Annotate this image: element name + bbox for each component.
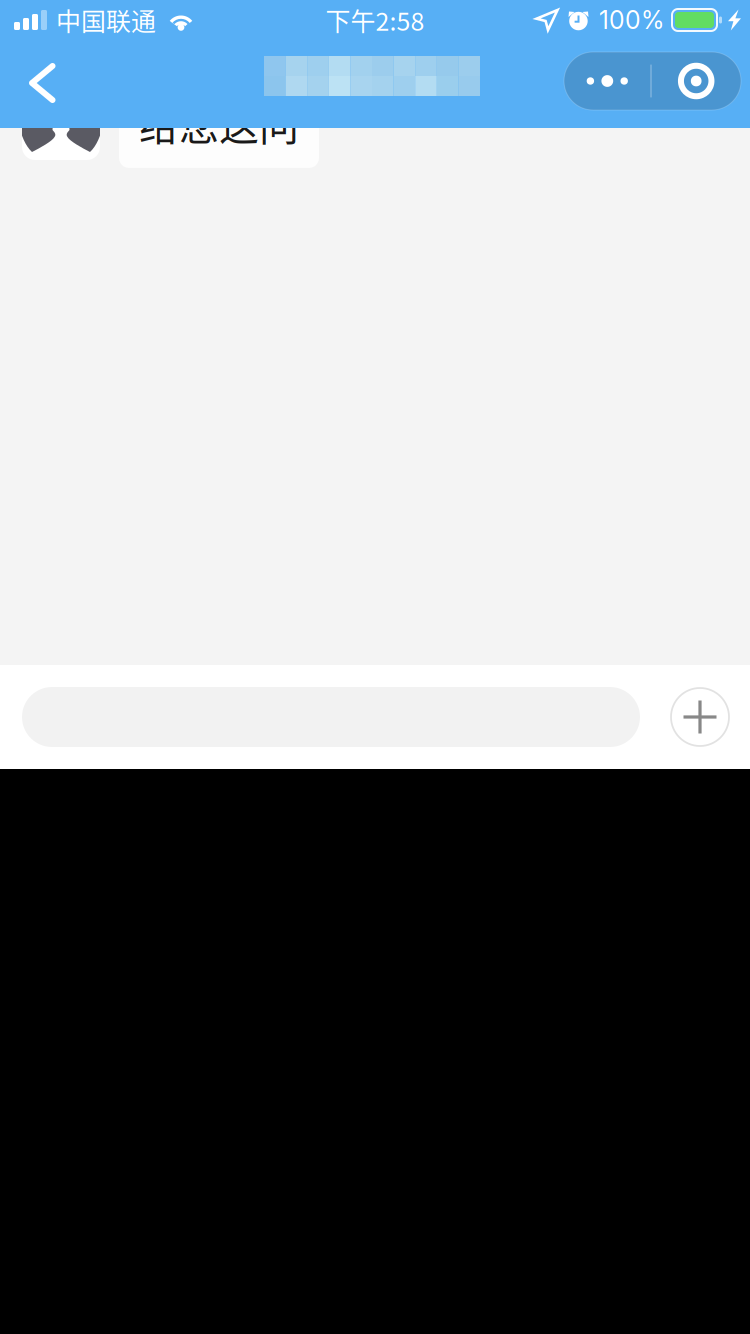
staticText: 中国联通 bbox=[56, 2, 156, 38]
button[interactable]: Back bbox=[6, 39, 78, 127]
button[interactable]: More actions bbox=[660, 665, 740, 769]
button[interactable]: Message input bbox=[0, 665, 640, 769]
button[interactable]: Close mini program bbox=[652, 52, 741, 110]
staticText: 给您这问 bbox=[139, 94, 299, 152]
staticText: 100% bbox=[599, 5, 664, 35]
staticText: 下午2:58 bbox=[325, 2, 424, 38]
button[interactable]: More bbox=[564, 52, 650, 110]
